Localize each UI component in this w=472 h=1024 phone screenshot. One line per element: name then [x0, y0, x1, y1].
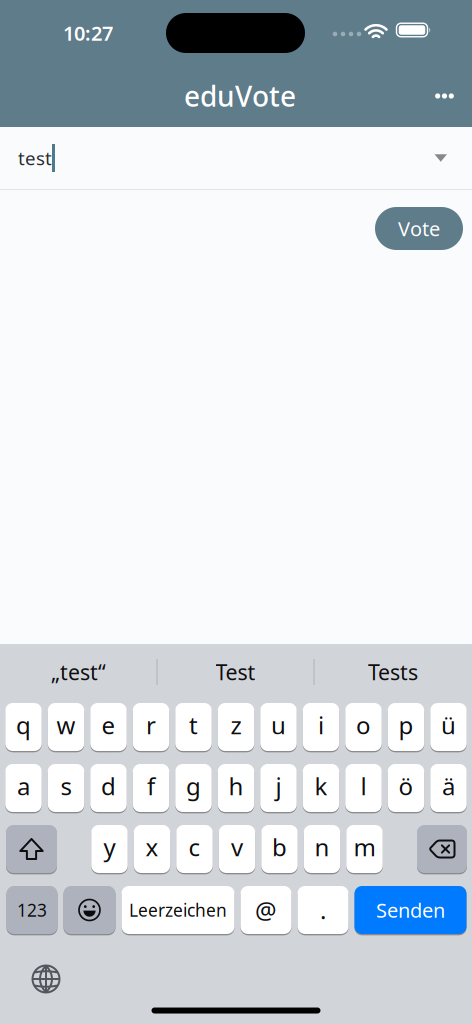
- staticText: @: [255, 894, 277, 926]
- staticText: l: [360, 770, 366, 802]
- staticText: Test: [215, 658, 255, 686]
- button[interactable]: x: [134, 825, 170, 873]
- button[interactable]: h: [218, 764, 254, 812]
- staticText: n: [314, 831, 329, 863]
- staticText: m: [353, 831, 375, 863]
- staticText: q: [16, 709, 31, 741]
- staticText: a: [17, 770, 30, 802]
- button[interactable]: q: [5, 703, 42, 751]
- button[interactable]: i: [303, 703, 339, 751]
- button[interactable]: u: [260, 703, 297, 751]
- staticText: eduVote: [184, 77, 296, 115]
- button[interactable]: t: [175, 703, 212, 751]
- button[interactable]: p: [388, 703, 424, 751]
- staticText: i: [318, 709, 324, 741]
- staticText: k: [314, 770, 327, 802]
- staticText: ü: [441, 709, 456, 741]
- staticText: ä: [442, 770, 455, 802]
- staticText: v: [231, 831, 243, 863]
- staticText: Leerzeichen: [129, 898, 227, 921]
- button[interactable]: c: [176, 825, 213, 873]
- button[interactable]: ö: [388, 764, 424, 812]
- button[interactable]: a: [5, 764, 42, 812]
- staticText: o: [356, 709, 371, 741]
- staticText: z: [230, 709, 241, 741]
- staticText: w: [56, 709, 75, 741]
- button[interactable]: v: [219, 825, 255, 873]
- button[interactable]: Tests: [314, 644, 471, 700]
- staticText: b: [272, 831, 287, 863]
- button[interactable]: l: [345, 764, 382, 812]
- staticText: d: [101, 770, 116, 802]
- button[interactable]: n: [304, 825, 340, 873]
- staticText: ö: [398, 770, 413, 802]
- button[interactable]: ü: [430, 703, 467, 751]
- staticText: e: [101, 709, 115, 741]
- staticText: f: [147, 770, 155, 802]
- staticText: h: [228, 770, 243, 802]
- button[interactable]: Senden: [354, 886, 466, 934]
- staticText: r: [146, 709, 156, 741]
- button[interactable]: y: [91, 825, 128, 873]
- button[interactable]: [24, 957, 68, 1001]
- staticText: x: [145, 831, 158, 863]
- button[interactable]: [422, 74, 466, 118]
- staticText: c: [188, 831, 200, 863]
- button[interactable]: f: [133, 764, 169, 812]
- staticText: Tests: [368, 658, 418, 686]
- staticText: t: [189, 709, 198, 741]
- button[interactable]: s: [48, 764, 84, 812]
- button[interactable]: m: [346, 825, 383, 873]
- button[interactable]: @: [240, 886, 291, 934]
- staticText: g: [186, 770, 201, 802]
- button[interactable]: .: [297, 886, 348, 934]
- staticText: j: [275, 770, 281, 802]
- button[interactable]: Vote: [375, 207, 463, 250]
- staticText: p: [398, 709, 413, 741]
- button[interactable]: [417, 825, 467, 873]
- staticText: s: [60, 770, 71, 802]
- button[interactable]: Test: [157, 644, 313, 700]
- button[interactable]: d: [90, 764, 127, 812]
- button[interactable]: ä: [430, 764, 467, 812]
- staticText: 10:27: [63, 20, 113, 46]
- staticText: „test“: [51, 658, 106, 686]
- staticText: 123: [17, 898, 47, 921]
- button[interactable]: z: [218, 703, 254, 751]
- button[interactable]: test: [0, 127, 472, 189]
- staticText: u: [271, 709, 286, 741]
- button[interactable]: r: [133, 703, 169, 751]
- staticText: y: [103, 831, 115, 863]
- button[interactable]: [6, 825, 57, 873]
- staticText: Vote: [398, 215, 440, 242]
- button[interactable]: b: [261, 825, 298, 873]
- button[interactable]: w: [48, 703, 84, 751]
- button[interactable]: e: [90, 703, 127, 751]
- button[interactable]: g: [175, 764, 212, 812]
- button[interactable]: j: [260, 764, 297, 812]
- button[interactable]: o: [345, 703, 382, 751]
- button[interactable]: „test“: [0, 644, 156, 700]
- button[interactable]: [63, 886, 115, 934]
- button[interactable]: Leerzeichen: [121, 886, 234, 934]
- staticText: Senden: [376, 897, 445, 923]
- staticText: .: [320, 894, 326, 926]
- button[interactable]: k: [303, 764, 339, 812]
- staticText: test: [18, 146, 52, 170]
- button[interactable]: 123: [6, 886, 57, 934]
